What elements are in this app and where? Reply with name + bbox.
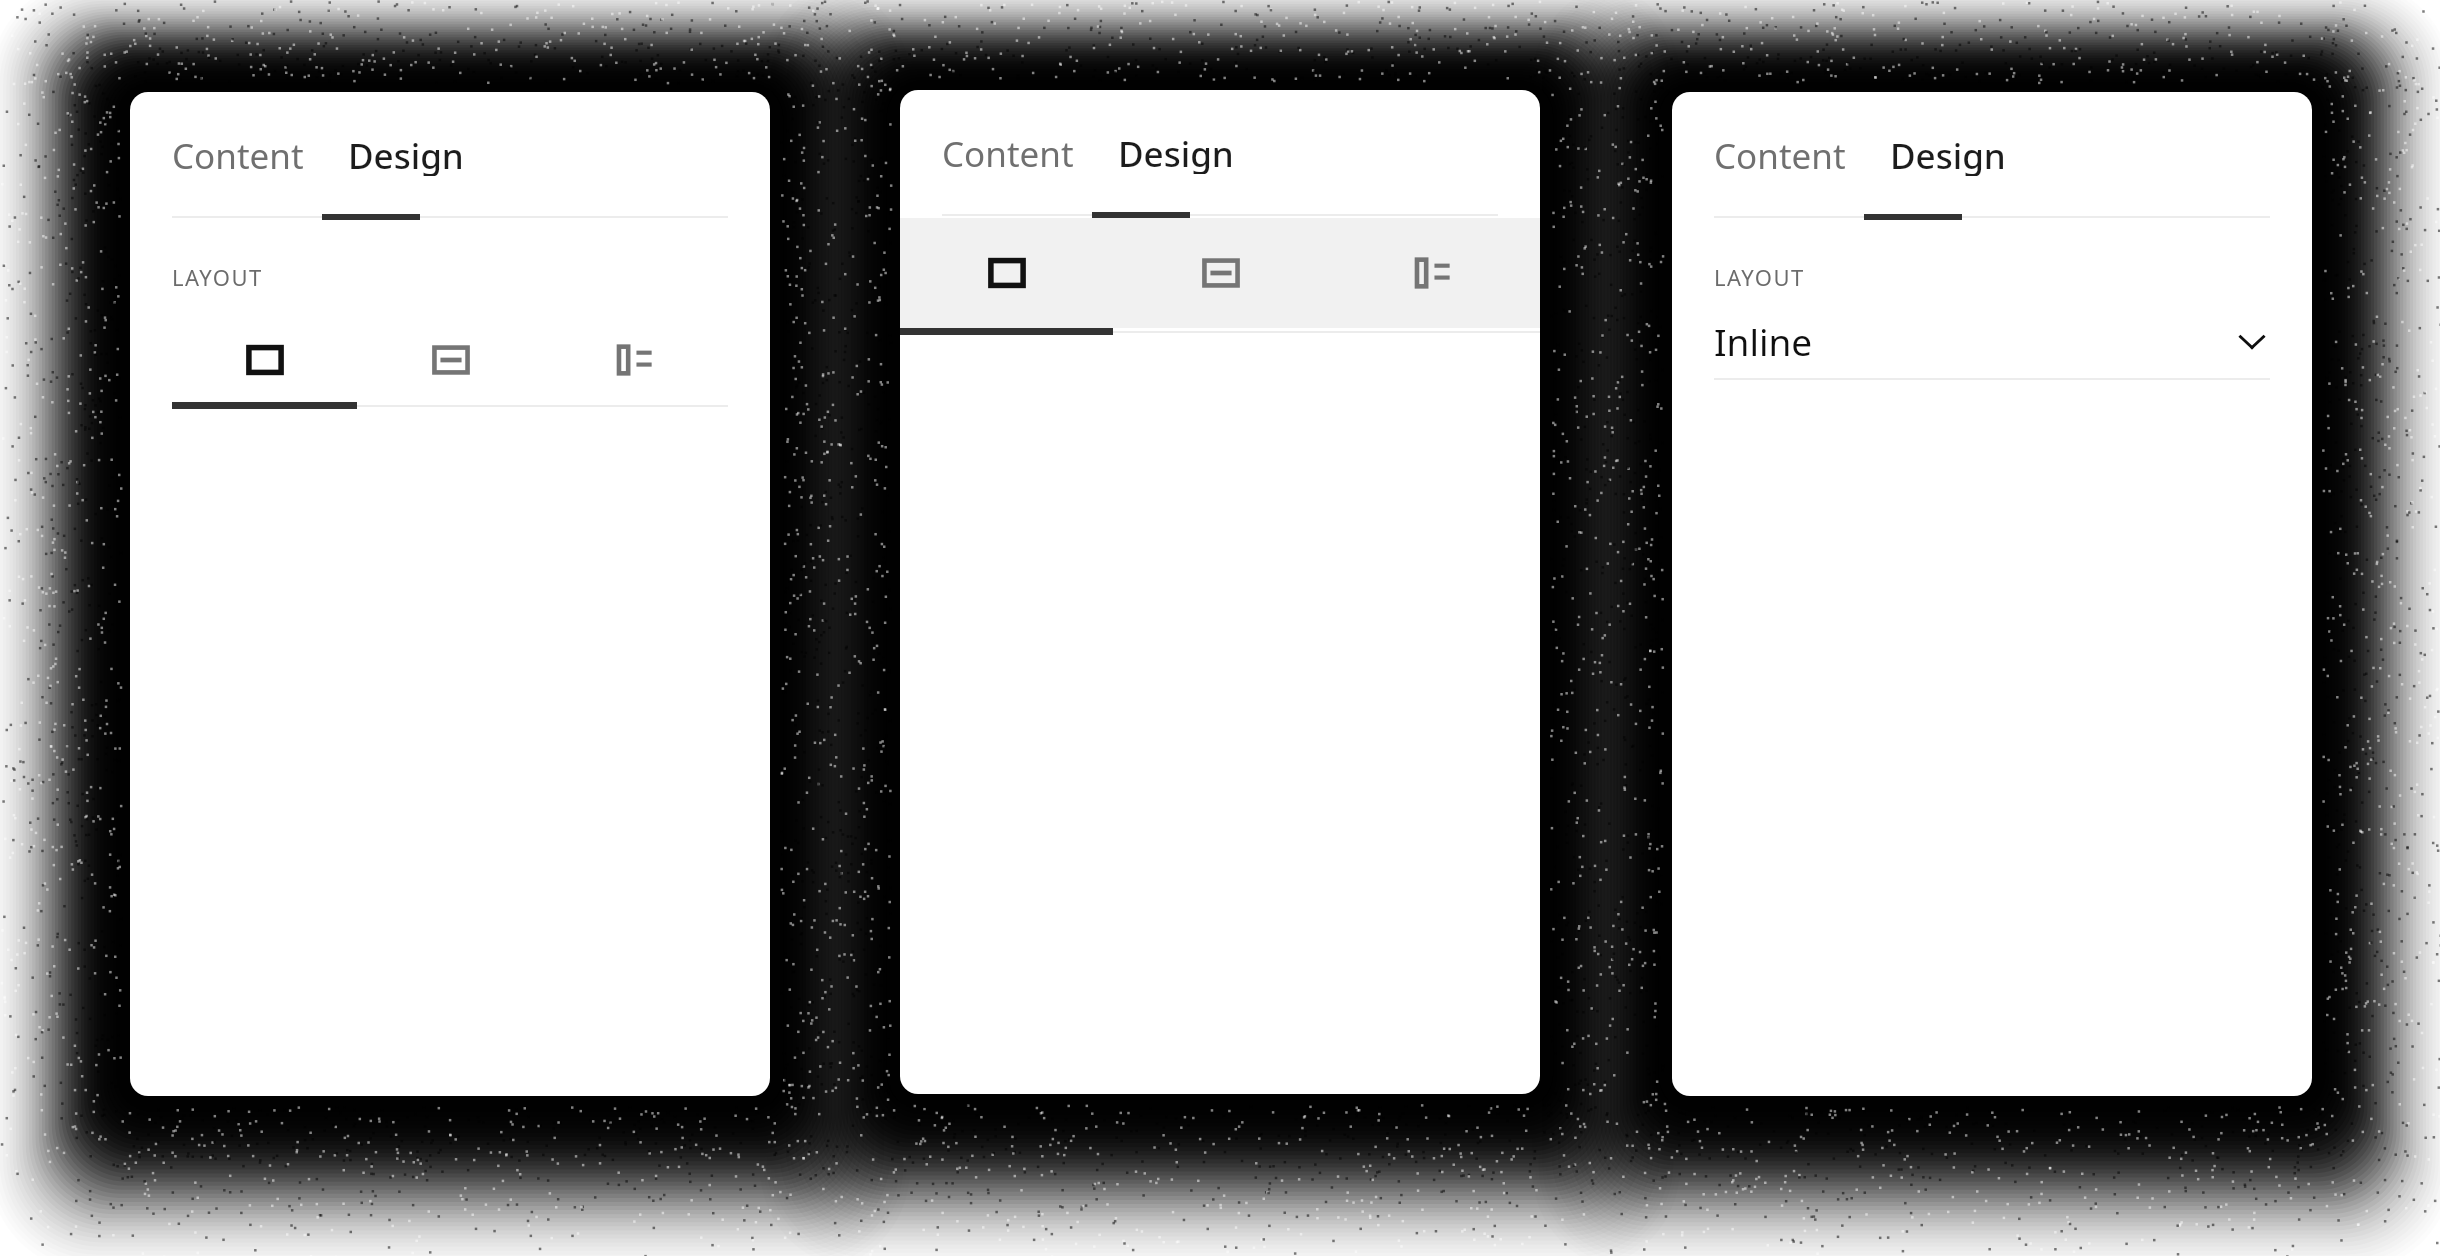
- button[interactable]: Overlay layout: [358, 318, 543, 402]
- staticText: Content: [172, 132, 304, 176]
- other: Expand layout options: [2234, 323, 2270, 359]
- button[interactable]: Design: [1118, 124, 1234, 180]
- button[interactable]: Inline layout: [1327, 218, 1540, 328]
- staticText: Design: [348, 132, 464, 176]
- button[interactable]: Inline layout: [543, 318, 728, 402]
- button[interactable]: Content: [172, 126, 304, 182]
- staticText: Design: [1118, 130, 1234, 174]
- staticText: Content: [942, 130, 1074, 174]
- button[interactable]: Content: [942, 124, 1074, 180]
- button[interactable]: Design: [1890, 126, 2006, 182]
- button[interactable]: Inline: [1714, 304, 2270, 378]
- staticText: LAYOUT: [172, 262, 263, 292]
- staticText: Design: [1890, 132, 2006, 176]
- button[interactable]: Design: [348, 126, 464, 182]
- button[interactable]: Full layout: [900, 218, 1114, 328]
- button[interactable]: Overlay layout: [1114, 218, 1327, 328]
- staticText: LAYOUT: [1714, 262, 1805, 292]
- staticText: Inline: [1714, 316, 1813, 366]
- staticText: Content: [1714, 132, 1846, 176]
- button[interactable]: Content: [1714, 126, 1846, 182]
- button[interactable]: Full layout: [172, 318, 358, 402]
